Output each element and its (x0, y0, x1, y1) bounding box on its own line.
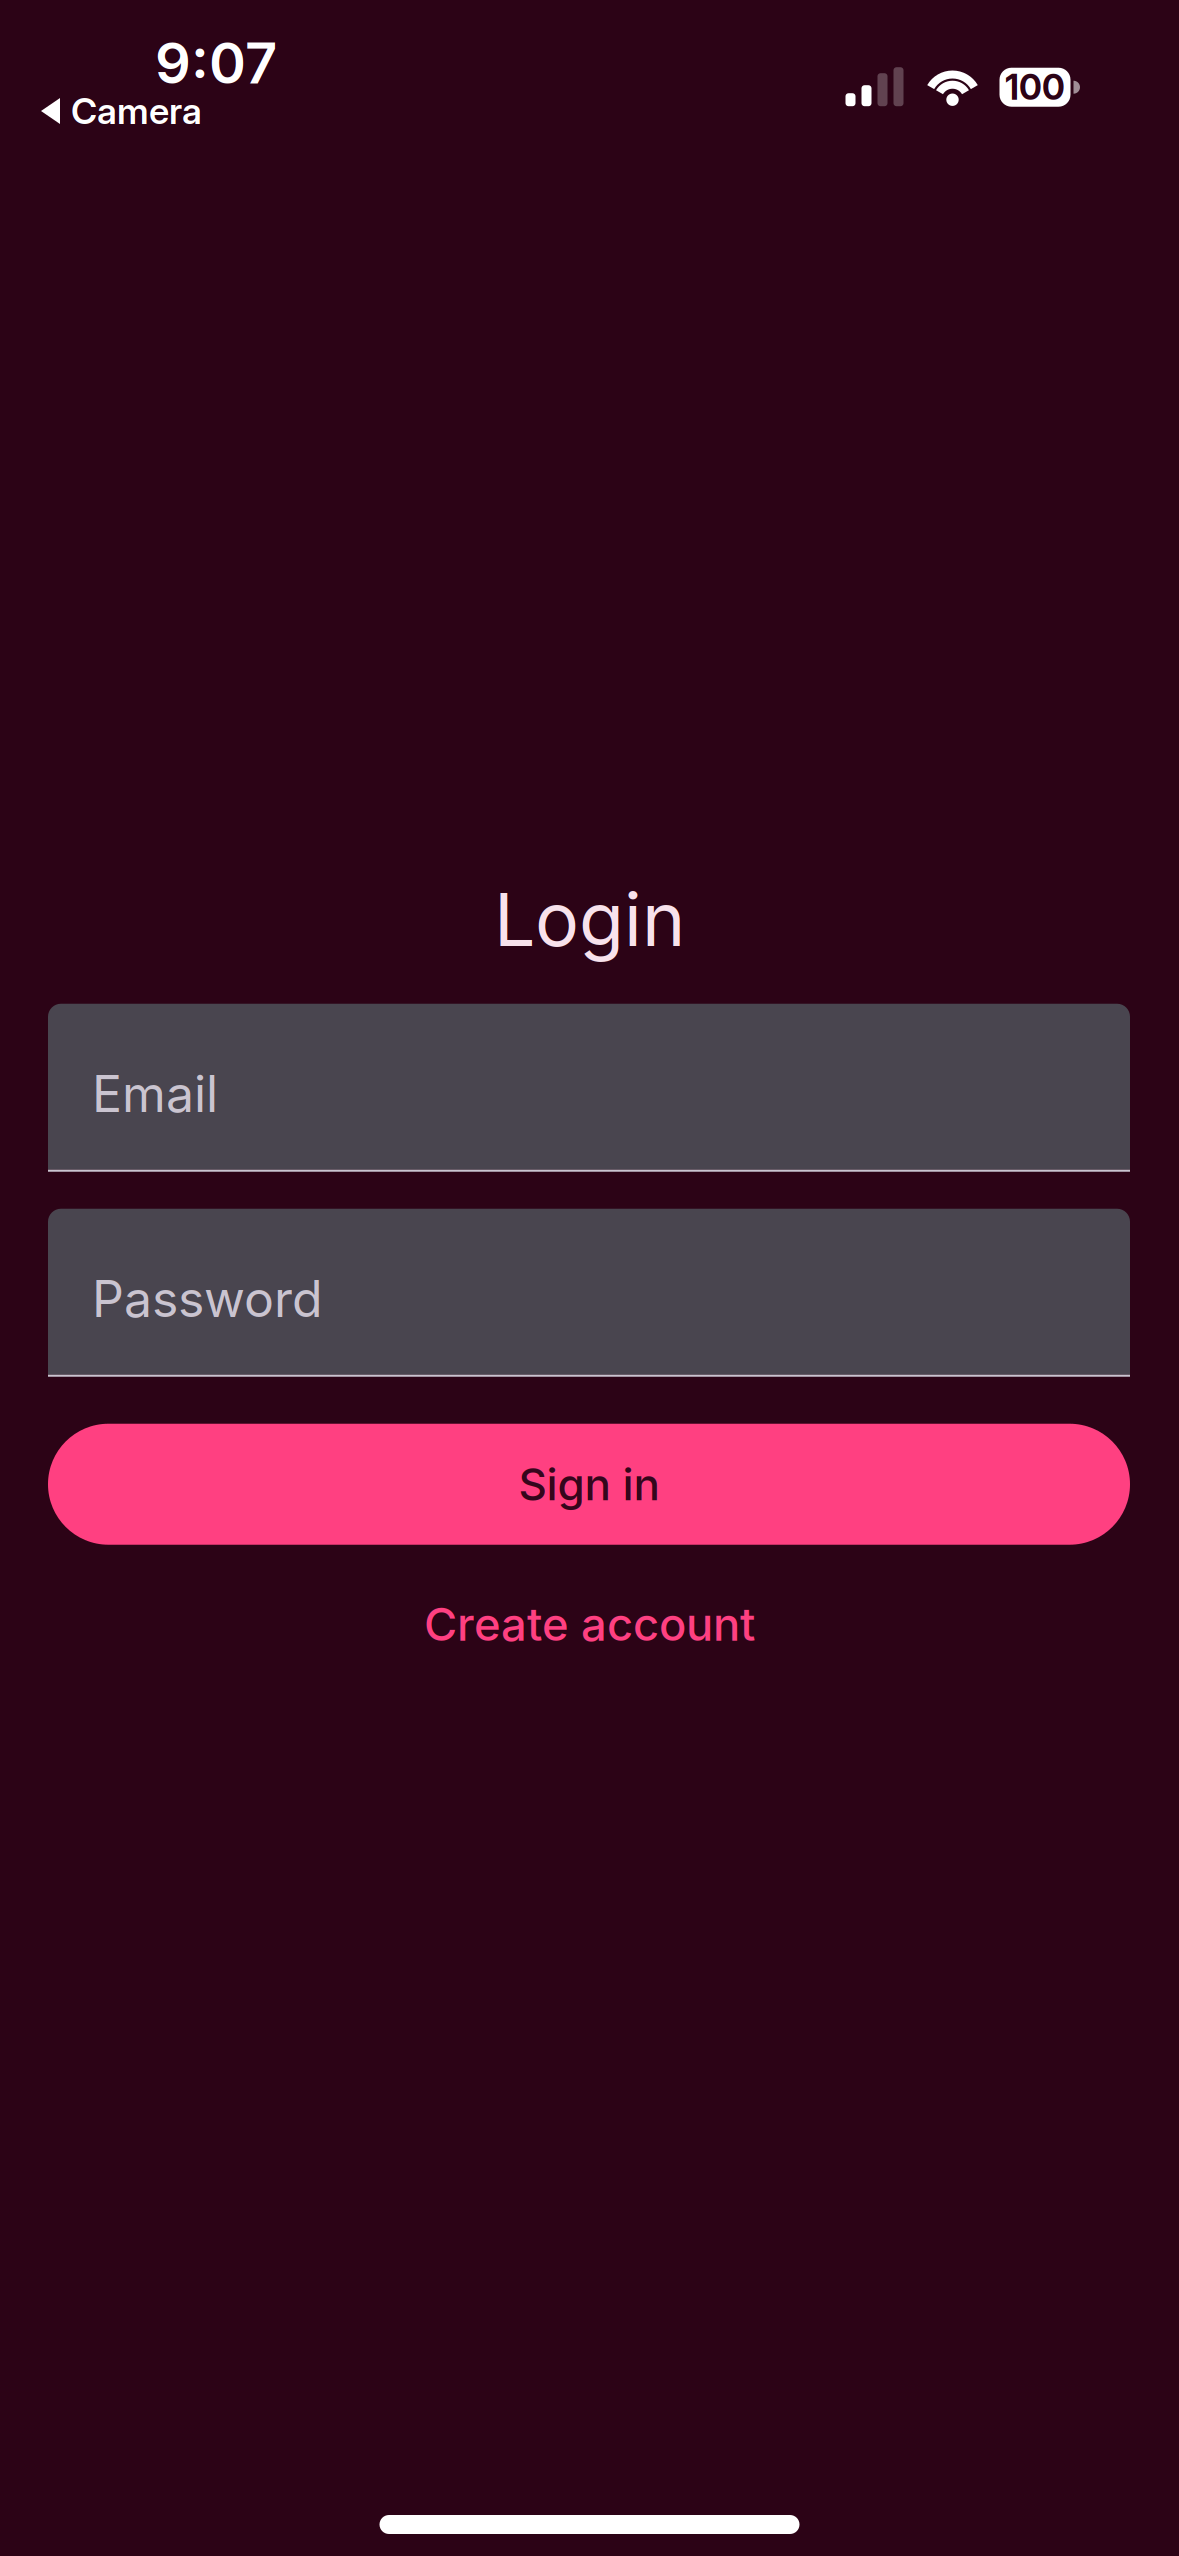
staticText: 9:07 (155, 29, 277, 97)
button[interactable]: Back to Camera (0, 7, 202, 133)
staticText: Create account (424, 1597, 755, 1652)
staticText: Camera (71, 89, 202, 133)
staticText: Password (92, 1268, 323, 1329)
button[interactable]: Email (48, 1004, 1130, 1172)
staticText: Email (92, 1063, 218, 1124)
button[interactable]: Sign in (48, 1424, 1130, 1545)
button[interactable]: Create account (424, 1597, 755, 1652)
staticText: Sign in (518, 1458, 659, 1511)
staticText: 100 (1005, 66, 1065, 108)
button[interactable]: Password (48, 1209, 1130, 1377)
staticText: Login (494, 875, 685, 964)
